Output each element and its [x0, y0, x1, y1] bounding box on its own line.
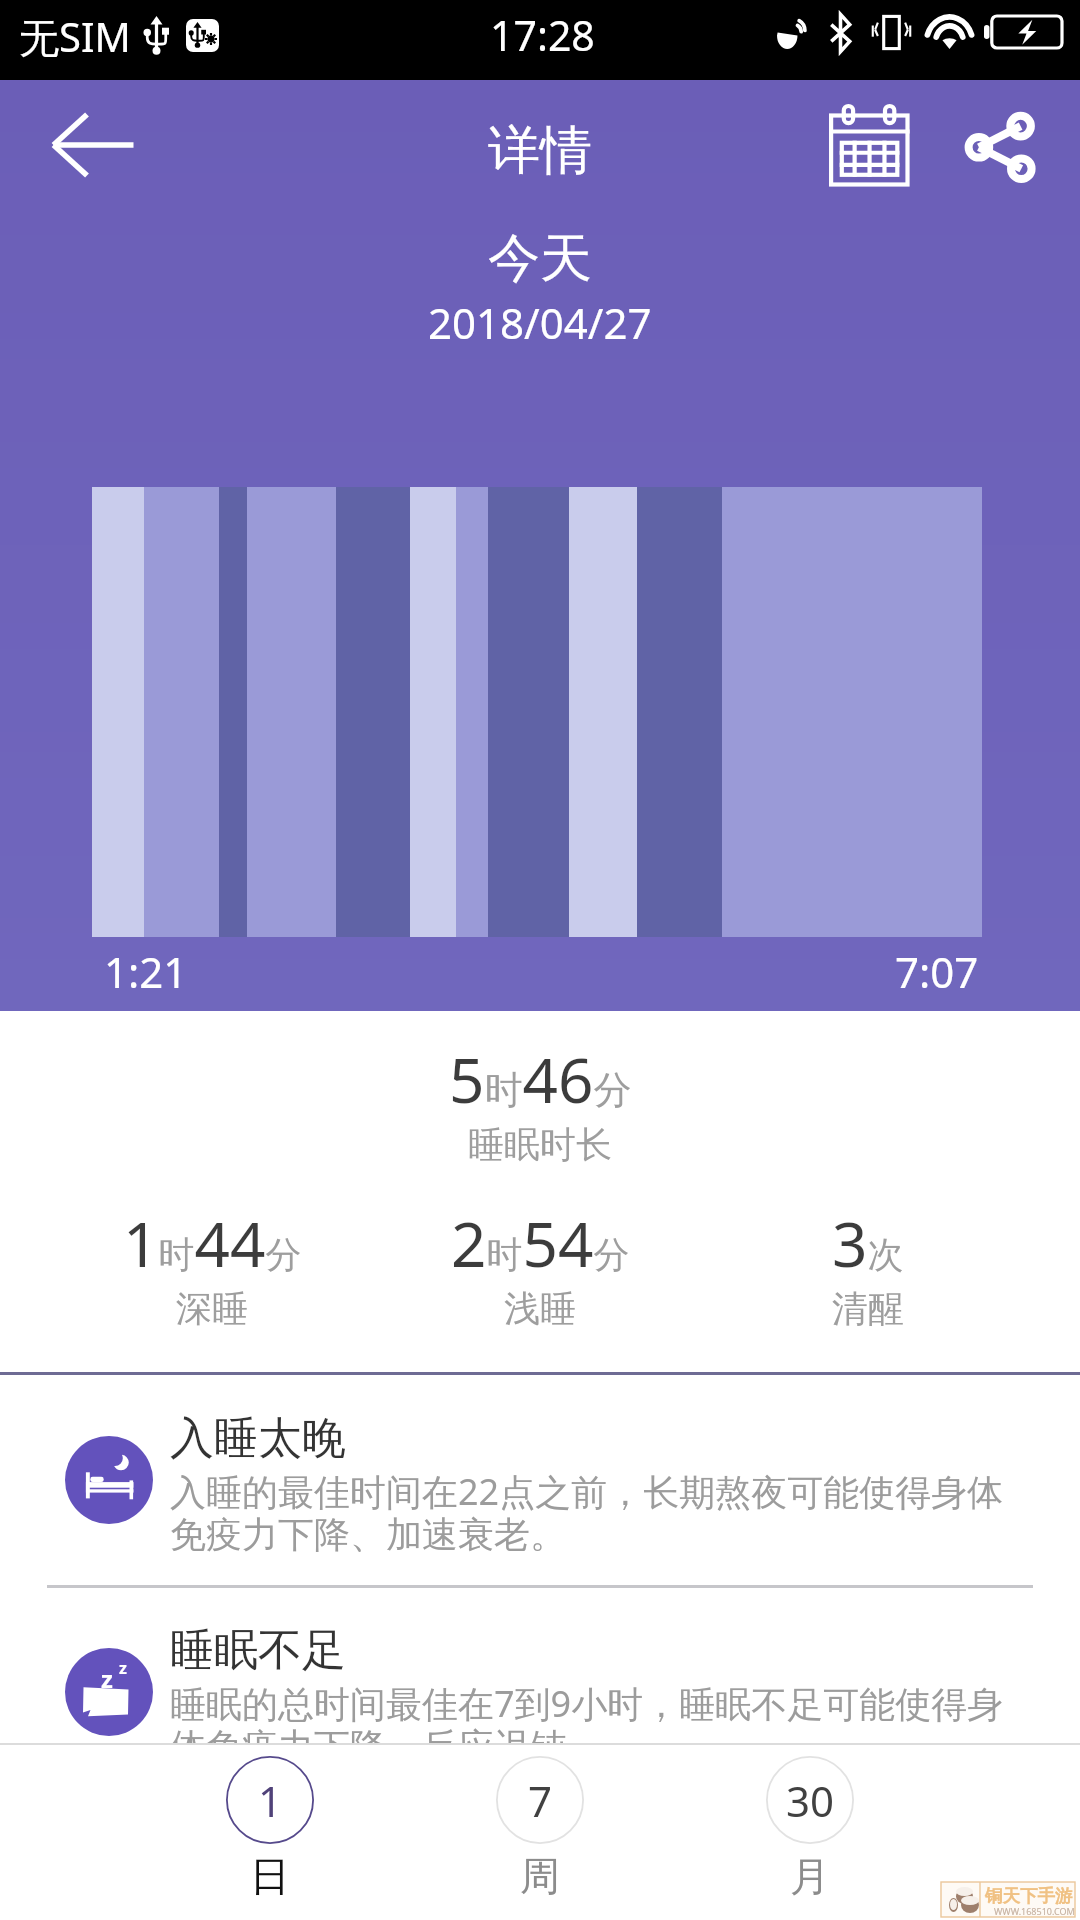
- staticText: 1:21: [104, 943, 188, 1000]
- button[interactable]: 7: [485, 1756, 595, 1916]
- staticText: 清醒: [832, 1286, 904, 1331]
- staticText: 月: [790, 1851, 830, 1901]
- staticText: 无SIM: [19, 9, 131, 64]
- staticText: 1: [258, 1772, 283, 1829]
- staticText: 浅睡: [504, 1286, 576, 1331]
- staticText: 2时54分: [451, 1201, 630, 1285]
- staticText: 2018/04/27: [428, 294, 652, 351]
- staticText: z: [119, 1657, 127, 1679]
- button[interactable]: 入睡太晚: [0, 1411, 1080, 1581]
- staticText: 入睡太晚: [170, 1411, 346, 1466]
- button[interactable]: Back: [20, 80, 170, 190]
- staticText: WWW.168510.COM: [994, 1905, 1075, 1917]
- staticText: 睡眠不足: [170, 1623, 346, 1678]
- button[interactable]: z: [0, 1623, 1080, 1793]
- button[interactable]: Share: [940, 88, 1080, 202]
- staticText: 3次: [832, 1201, 904, 1285]
- staticText: 睡眠的总时间最佳在7到9小时，睡眠不足可能使得身体免疫力下降、反应迟钝。: [170, 1679, 1008, 1770]
- staticText: 今天: [488, 226, 592, 292]
- staticText: 周: [520, 1851, 560, 1901]
- button[interactable]: 30: [755, 1756, 865, 1916]
- staticText: 17:28: [490, 7, 595, 63]
- staticText: 30: [786, 1772, 835, 1829]
- staticText: 5时46分: [449, 1037, 632, 1121]
- staticText: 日: [250, 1851, 290, 1901]
- button[interactable]: Calendar: [800, 88, 940, 202]
- staticText: 7:07: [895, 943, 979, 1000]
- staticText: 深睡: [176, 1286, 248, 1331]
- staticText: 7: [528, 1772, 553, 1829]
- staticText: 铜天下手游: [985, 1885, 1073, 1907]
- staticText: 1时44分: [123, 1201, 302, 1285]
- staticText: 睡眠时长: [468, 1122, 612, 1167]
- staticText: 入睡的最佳时间在22点之前，长期熬夜可能使得身体免疫力下降、加速衰老。: [170, 1467, 1008, 1558]
- staticText: 详情: [488, 118, 592, 184]
- button[interactable]: 1: [215, 1756, 325, 1916]
- staticText: z: [101, 1662, 113, 1695]
